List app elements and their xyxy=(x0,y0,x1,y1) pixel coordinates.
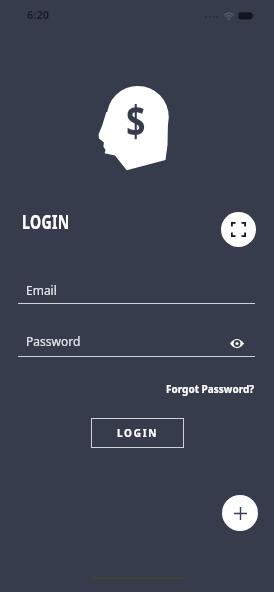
staticText: LOGIN xyxy=(117,426,159,440)
staticText: LOGIN xyxy=(22,209,70,235)
staticText: 6:20 xyxy=(27,7,49,22)
button[interactable]: Forgot Password? xyxy=(166,382,255,396)
staticText: Email xyxy=(26,282,57,298)
button[interactable] xyxy=(221,212,256,247)
button[interactable] xyxy=(222,495,258,531)
button[interactable]: LOGIN xyxy=(91,418,184,448)
staticText: Password xyxy=(26,333,81,349)
staticText: $ xyxy=(126,91,146,149)
button[interactable] xyxy=(230,338,244,349)
